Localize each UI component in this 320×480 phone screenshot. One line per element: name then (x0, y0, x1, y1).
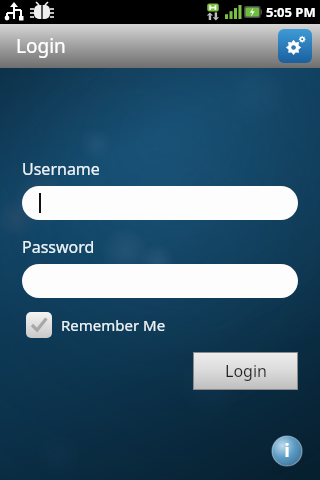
staticText: i (284, 439, 290, 462)
staticText: Login (225, 360, 267, 382)
button[interactable]: Remember Me (26, 312, 166, 338)
button[interactable]: Login (194, 353, 297, 389)
staticText: Username (22, 158, 100, 180)
staticText: Remember Me (61, 315, 166, 335)
staticText: Password (22, 236, 95, 258)
staticText: Login (16, 33, 66, 59)
button[interactable]: Settings (278, 29, 312, 63)
button[interactable] (22, 186, 298, 220)
button[interactable] (22, 264, 298, 298)
button[interactable]: Info (272, 436, 302, 466)
staticText: 5:05 PM (266, 3, 316, 21)
